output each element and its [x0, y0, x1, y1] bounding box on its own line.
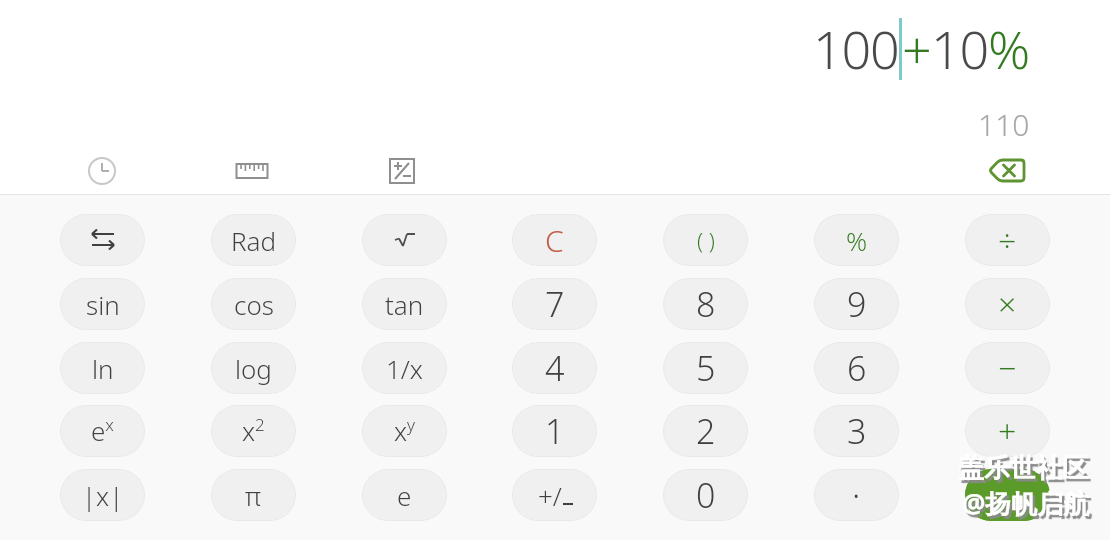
button[interactable] — [965, 469, 1050, 521]
staticText: − — [998, 346, 1017, 390]
staticText: tan — [385, 287, 424, 322]
button[interactable]: 7 — [512, 278, 597, 330]
staticText: 5 — [696, 345, 716, 391]
staticText: 0 — [696, 472, 716, 518]
button[interactable]: ln — [60, 342, 145, 394]
button[interactable]: % — [814, 214, 899, 266]
button[interactable]: 3 — [814, 405, 899, 457]
button[interactable] — [378, 147, 426, 195]
button[interactable]: 4 — [512, 342, 597, 394]
staticText: 盖乐世社区 — [958, 452, 1088, 485]
button[interactable]: ( ) — [663, 214, 748, 266]
button[interactable]: 2 — [663, 405, 748, 457]
button[interactable]: 1 — [512, 405, 597, 457]
staticText: 1/x — [386, 351, 423, 386]
button[interactable]: Rad — [211, 214, 296, 266]
button[interactable] — [78, 147, 126, 195]
staticText: xy — [394, 413, 416, 449]
button[interactable]: 1/x — [362, 342, 447, 394]
button[interactable]: C — [512, 214, 597, 266]
staticText: ex — [91, 413, 114, 449]
button[interactable]: π — [211, 469, 296, 521]
staticText: +/ — [538, 478, 562, 513]
button[interactable]: 5 — [663, 342, 748, 394]
button[interactable]: − — [965, 342, 1050, 394]
staticText: % — [988, 13, 1030, 84]
staticText: ( ) — [697, 225, 715, 255]
staticText: · — [852, 472, 861, 518]
button[interactable]: xy — [362, 405, 447, 457]
button[interactable]: 8 — [663, 278, 748, 330]
button[interactable] — [362, 214, 447, 266]
button[interactable]: |x| — [60, 469, 145, 521]
staticText: × — [998, 282, 1017, 326]
button[interactable]: ex — [60, 405, 145, 457]
staticText: 6 — [847, 345, 867, 391]
staticText: 100 — [813, 13, 899, 84]
button[interactable]: ÷ — [965, 214, 1050, 266]
staticText: x2 — [242, 413, 265, 449]
staticText: + — [998, 409, 1017, 453]
staticText: @扬帆启航 — [962, 485, 1090, 521]
button[interactable]: 6 — [814, 342, 899, 394]
staticText: 110 — [978, 104, 1030, 145]
staticText: 3 — [847, 408, 867, 454]
staticText: 8 — [696, 281, 716, 327]
button[interactable]: × — [965, 278, 1050, 330]
button[interactable]: + — [965, 405, 1050, 457]
button[interactable] — [983, 146, 1031, 194]
staticText: 2 — [696, 408, 716, 454]
staticText: 1 — [545, 408, 565, 454]
staticText: + — [902, 13, 931, 84]
button[interactable] — [228, 147, 276, 195]
button[interactable]: cos — [211, 278, 296, 330]
staticText: 9 — [847, 281, 867, 327]
staticText: |x| — [82, 478, 124, 513]
staticText: log — [235, 351, 272, 386]
staticText: % — [846, 223, 868, 258]
staticText: 10 — [931, 13, 988, 84]
staticText: Rad — [231, 223, 277, 258]
staticText: ÷ — [998, 218, 1017, 262]
staticText: 7 — [545, 281, 565, 327]
staticText: e — [397, 478, 412, 513]
button[interactable]: 0 — [663, 469, 748, 521]
staticText: cos — [234, 287, 274, 322]
button[interactable]: +/ — [512, 469, 597, 521]
button[interactable]: 9 — [814, 278, 899, 330]
staticText: π — [245, 478, 262, 513]
button[interactable]: · — [814, 469, 899, 521]
button[interactable]: x2 — [211, 405, 296, 457]
button[interactable]: e — [362, 469, 447, 521]
staticText: sin — [86, 287, 120, 322]
button[interactable]: tan — [362, 278, 447, 330]
staticText: ln — [92, 351, 114, 386]
staticText: C — [545, 220, 564, 261]
button[interactable]: log — [211, 342, 296, 394]
button[interactable]: sin — [60, 278, 145, 330]
button[interactable] — [60, 214, 145, 266]
staticText: 4 — [545, 345, 565, 391]
